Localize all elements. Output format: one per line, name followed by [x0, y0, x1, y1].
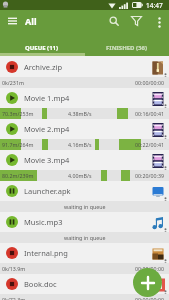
- staticText: 00:16/00:41: [135, 110, 165, 117]
- staticText: Movie 3.mp4: [24, 155, 70, 165]
- staticText: Internal.png: [24, 248, 68, 258]
- staticText: QUEUE (11): [25, 44, 59, 52]
- staticText: 00:00/00:00: [135, 79, 165, 86]
- staticText: 80.2m/239m: [2, 172, 34, 179]
- staticText: 4.38mB/s: [68, 110, 92, 117]
- staticText: 14:47: [146, 1, 163, 10]
- button[interactable]: Launcher.apk: [0, 180, 169, 211]
- staticText: 70.3m/253m: [2, 110, 34, 117]
- staticText: 0k/231m: [2, 79, 24, 86]
- button[interactable]: [4, 13, 20, 29]
- staticText: Launcher.apk: [24, 186, 71, 196]
- staticText: Archive.zip: [24, 62, 63, 72]
- button[interactable]: [127, 12, 145, 30]
- staticText: FINISHED (36): [106, 44, 147, 52]
- button[interactable]: Music.mp3: [0, 211, 169, 242]
- staticText: 0k/13.9m: [2, 265, 26, 272]
- button[interactable]: Movie 3.mp4: [0, 149, 169, 180]
- button[interactable]: Movie 1.mp4: [0, 87, 169, 118]
- staticText: Music.mp3: [24, 217, 63, 227]
- staticText: 91.7m/264m: [2, 141, 34, 148]
- staticText: 00:20/00:39: [135, 172, 165, 179]
- staticText: 00:00/00:00: [135, 296, 165, 300]
- staticText: 00:00/00:00: [135, 265, 165, 272]
- button[interactable]: Archive.zip: [0, 56, 169, 87]
- staticText: 4.16mB/s: [68, 141, 92, 148]
- staticText: waiting in queue: [64, 234, 106, 241]
- button[interactable]: Book.doc: [0, 273, 169, 300]
- button[interactable]: Internal.png: [0, 242, 169, 273]
- button[interactable]: [105, 12, 123, 30]
- staticText: Movie 2.mp4: [24, 124, 70, 134]
- button[interactable]: [133, 268, 162, 297]
- button[interactable]: [151, 12, 167, 32]
- staticText: 4.00mB/s: [68, 172, 92, 179]
- button[interactable]: Movie 2.mp4: [0, 118, 169, 149]
- staticText: waiting in queue: [64, 203, 106, 210]
- button[interactable]: QUEUE (11): [0, 33, 84, 56]
- staticText: 00:22/00:41: [135, 141, 165, 148]
- staticText: Movie 1.mp4: [24, 93, 70, 103]
- button[interactable]: FINISHED (36): [84, 33, 169, 56]
- staticText: Book.doc: [24, 279, 57, 289]
- staticText: 0k/72.3m: [2, 296, 26, 300]
- staticText: All: [25, 15, 37, 27]
